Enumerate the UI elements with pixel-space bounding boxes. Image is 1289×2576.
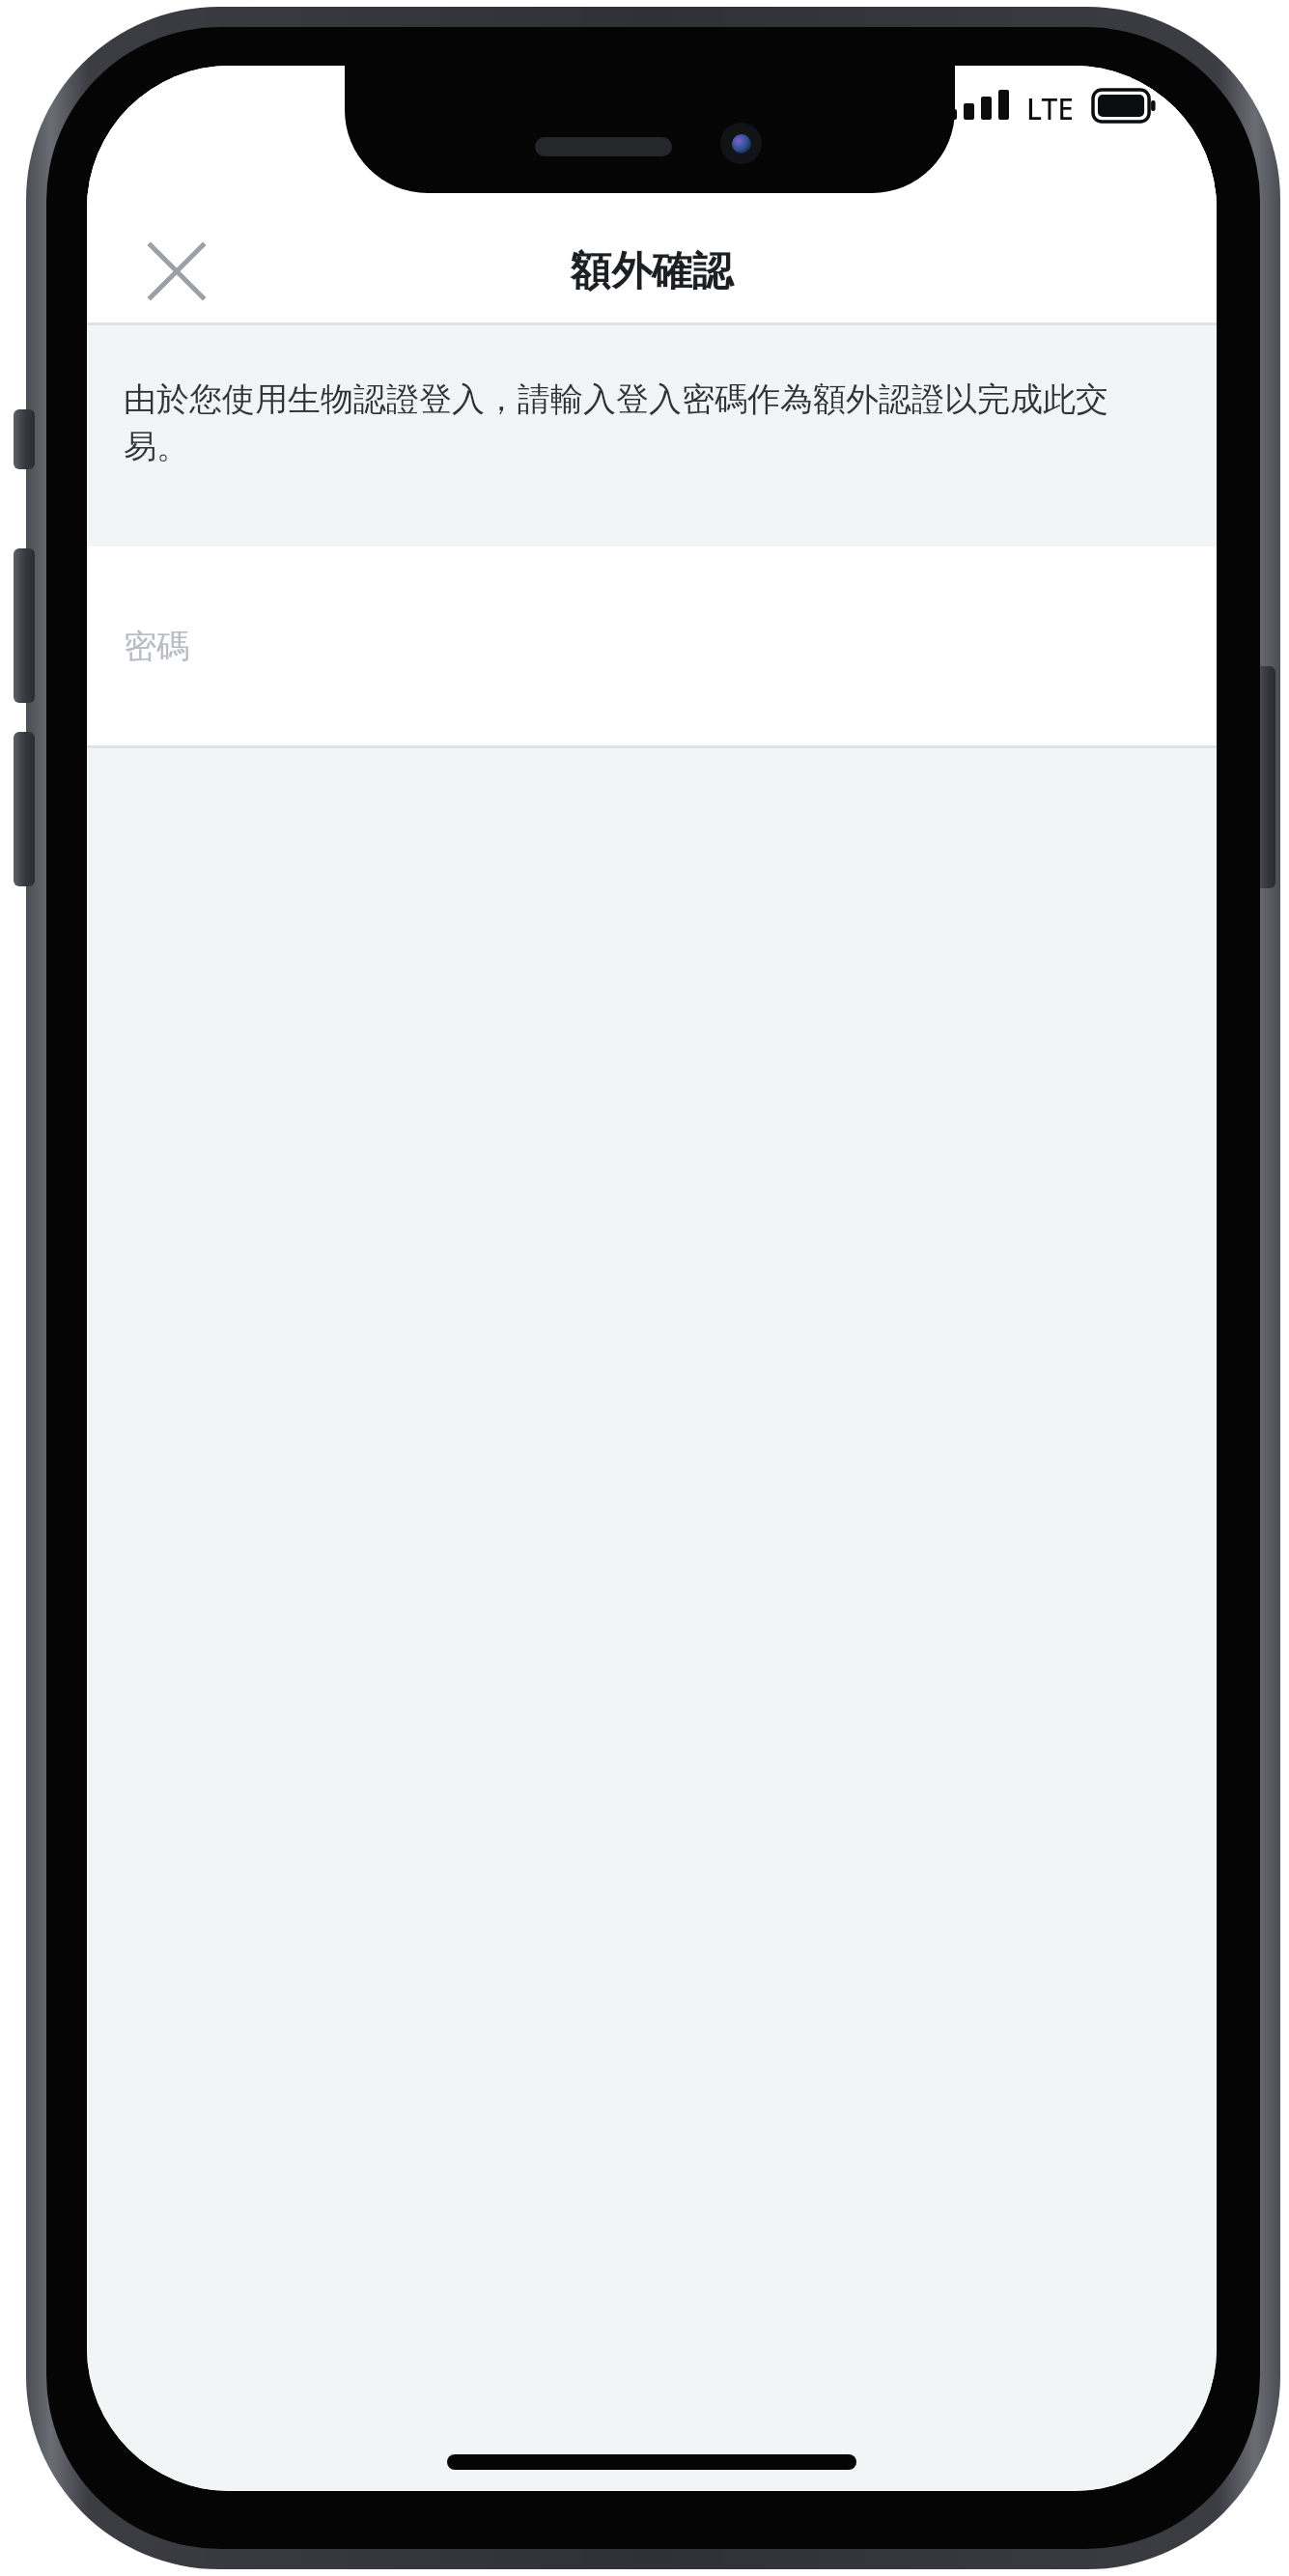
button[interactable]: 密碼 (87, 546, 1217, 745)
staticText: LTE (1026, 89, 1074, 128)
staticText: 額外確認 (571, 246, 733, 297)
button[interactable]: Close (126, 220, 228, 322)
staticText: 由於您使用生物認證登入，請輸入登入密碼作為額外認證以完成此交易。 (124, 378, 1170, 467)
staticText: 密碼 (124, 626, 189, 667)
